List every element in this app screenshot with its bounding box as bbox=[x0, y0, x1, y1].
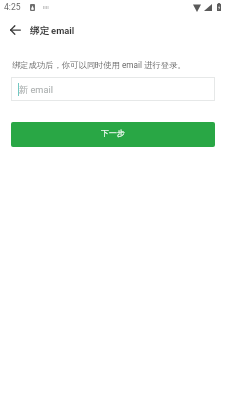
staticText: 绑定成功后，你可以同时使用 email 进行登录。 bbox=[12, 60, 186, 70]
staticText: 下一步 bbox=[101, 128, 125, 138]
staticText: 4:25 bbox=[4, 2, 21, 12]
button[interactable]: Back bbox=[1, 16, 29, 44]
staticText: 新 email bbox=[19, 84, 53, 96]
staticText: 绑定 email bbox=[30, 25, 75, 37]
button[interactable]: 下一步 bbox=[11, 122, 215, 147]
button[interactable]: 新 email 输入框 bbox=[11, 77, 215, 101]
